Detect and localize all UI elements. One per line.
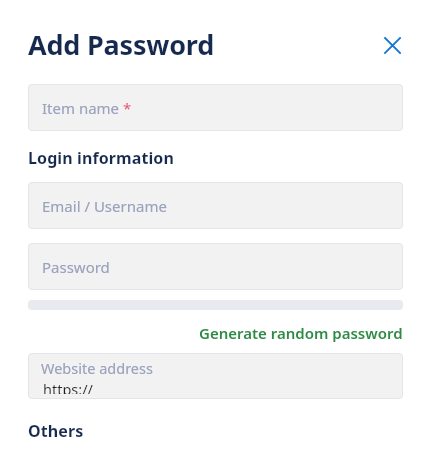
button[interactable]: Password bbox=[28, 243, 403, 290]
button[interactable]: Generate random password bbox=[199, 323, 403, 343]
staticText: Login information bbox=[28, 147, 174, 169]
staticText: Password bbox=[42, 257, 110, 277]
button[interactable]: Website address bbox=[28, 353, 403, 399]
staticText: Website address bbox=[41, 358, 153, 378]
staticText: Others bbox=[28, 420, 84, 442]
button[interactable]: Item name * bbox=[28, 84, 403, 131]
button[interactable]: Email / Username bbox=[28, 182, 403, 229]
staticText: Email / Username bbox=[42, 196, 167, 216]
button[interactable]: Add Password bbox=[28, 26, 215, 63]
button[interactable]: Close bbox=[375, 28, 409, 62]
staticText: https:// bbox=[43, 379, 93, 394]
staticText: Item name * bbox=[42, 98, 132, 118]
